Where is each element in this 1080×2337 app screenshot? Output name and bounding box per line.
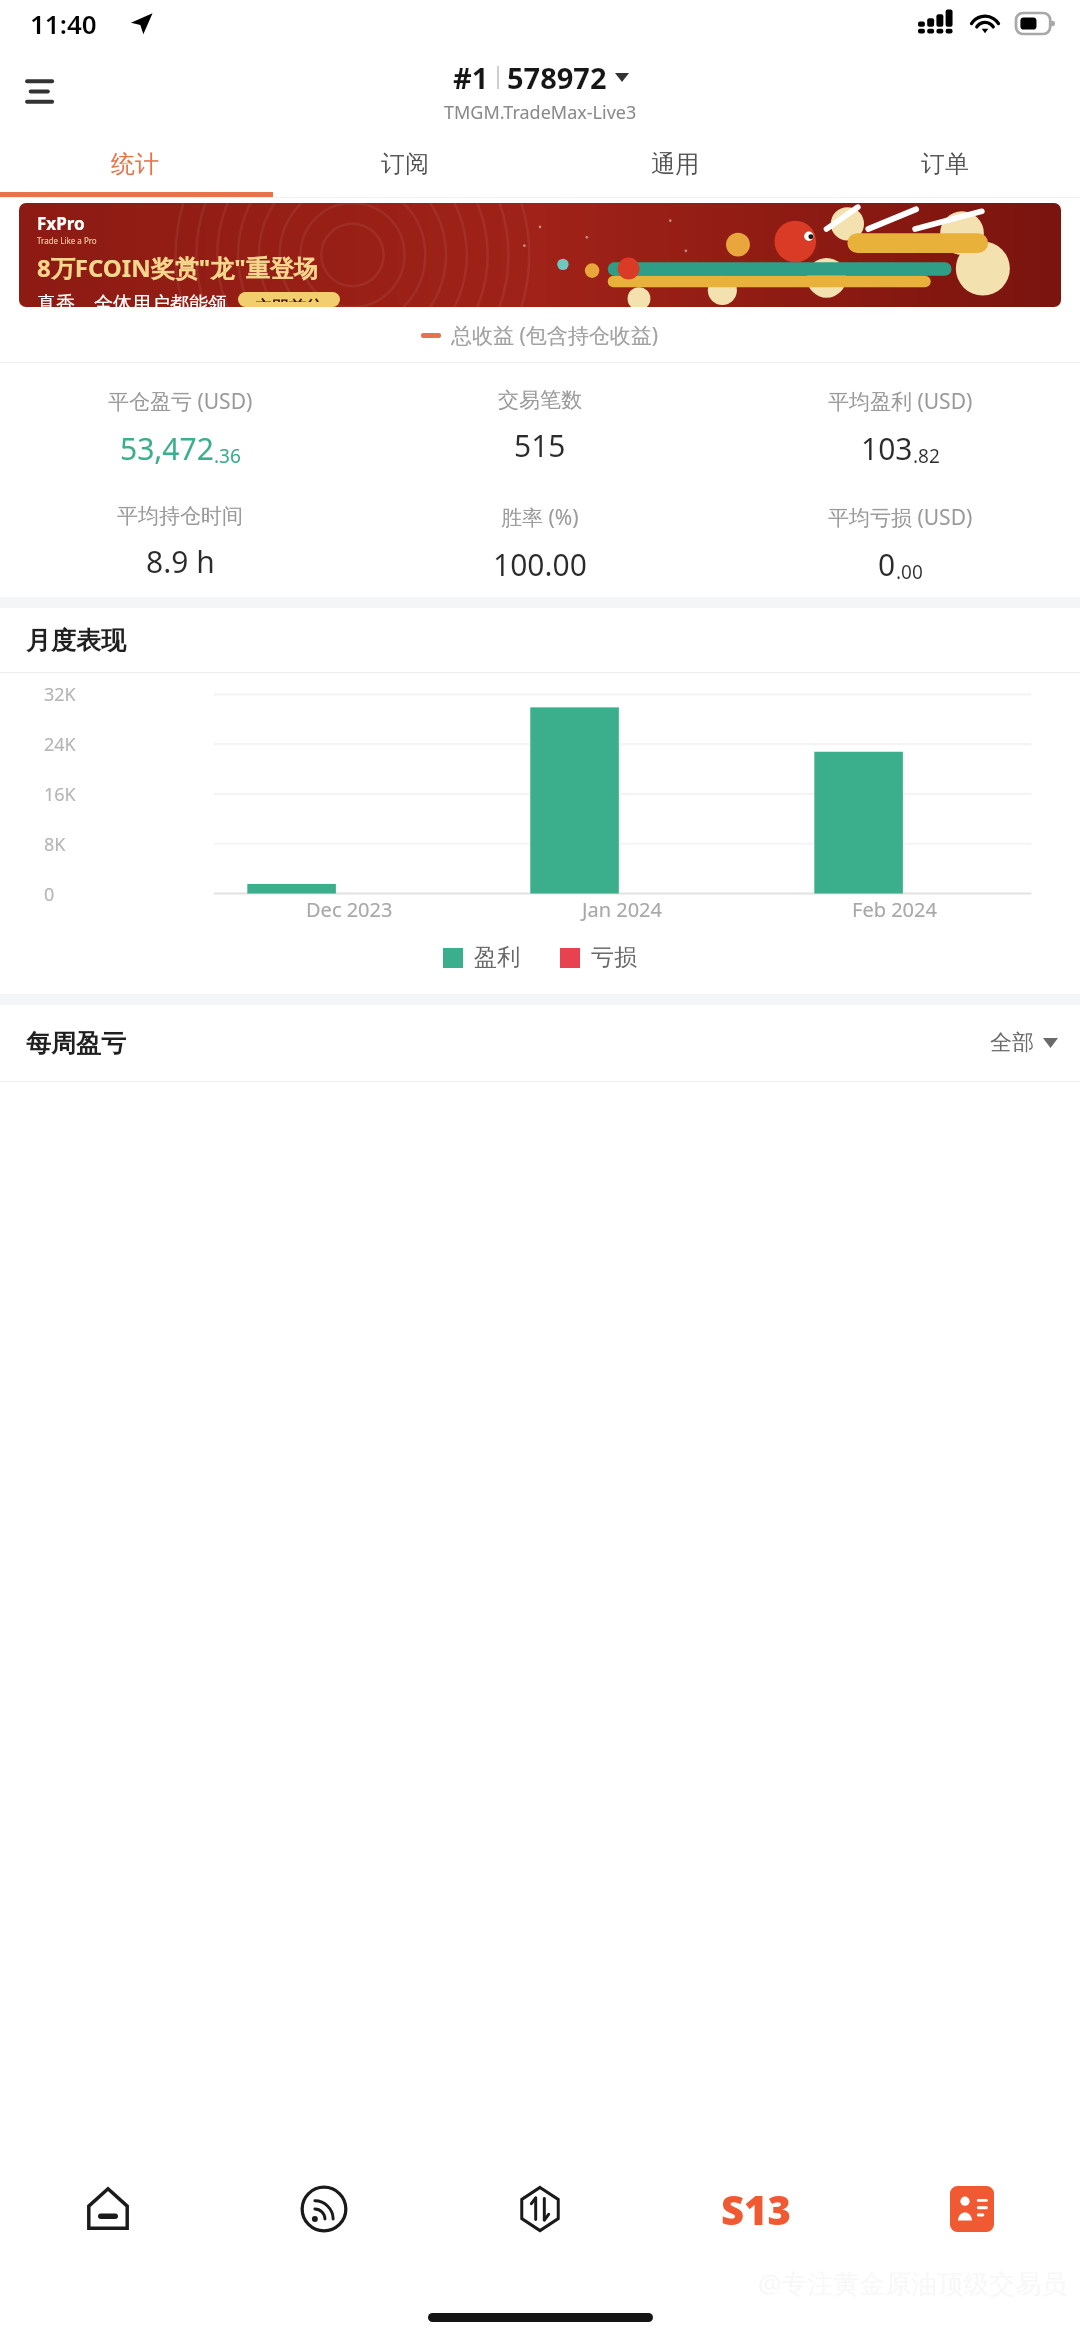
button[interactable]: S13 xyxy=(648,2153,864,2265)
staticText: .00 xyxy=(896,559,923,585)
button[interactable]: 全部 xyxy=(990,1029,1058,1057)
staticText: Dec 2023 xyxy=(306,896,393,923)
staticText: 平均持仓时间 xyxy=(117,503,243,529)
button[interactable]: Menu xyxy=(16,62,74,120)
button[interactable]: #1 xyxy=(444,58,637,125)
staticText: 统计 xyxy=(111,149,159,179)
staticText: 8.9 h xyxy=(146,541,215,582)
staticText: 8万FCOIN奖赏"龙"重登场 xyxy=(37,251,318,284)
staticText: 订阅 xyxy=(381,149,429,179)
staticText: 103 xyxy=(861,428,913,469)
staticText: TMGM.TradeMax-Live3 xyxy=(444,100,637,125)
button[interactable]: 胜率 (%) xyxy=(360,503,720,585)
staticText: .82 xyxy=(913,443,940,469)
staticText: 0 xyxy=(44,882,55,907)
button[interactable]: 平均亏损 (USD) xyxy=(720,503,1080,585)
staticText: 平仓盈亏 (USD) xyxy=(108,387,253,416)
staticText: 0 xyxy=(878,544,896,585)
button[interactable]: Signals xyxy=(216,2153,432,2265)
button[interactable]: 通用 xyxy=(540,136,810,192)
staticText: .36 xyxy=(214,443,241,469)
staticText: 16K xyxy=(44,782,76,807)
staticText: #1 xyxy=(453,58,489,97)
button[interactable]: FxPro xyxy=(19,203,1061,307)
staticText: 100.00 xyxy=(493,544,587,585)
button[interactable]: 订阅 xyxy=(270,136,540,192)
staticText: 盈利 xyxy=(474,943,520,972)
staticText: 24K xyxy=(44,732,76,757)
staticText: 立即前往 xyxy=(255,297,323,302)
staticText: 8K xyxy=(44,832,66,857)
staticText: 平均盈利 (USD) xyxy=(828,387,973,416)
staticText: 总收益 (包含持仓收益) xyxy=(451,321,659,350)
staticText: 平均亏损 (USD) xyxy=(828,503,973,532)
staticText: 全部 xyxy=(990,1029,1034,1057)
staticText: 交易笔数 xyxy=(498,387,582,413)
button[interactable]: 交易笔数 xyxy=(360,387,720,466)
staticText: Trade Like a Pro xyxy=(37,235,97,246)
button[interactable]: Trade xyxy=(432,2153,648,2265)
staticText: Feb 2024 xyxy=(852,896,937,923)
staticText: 53,472 xyxy=(120,428,214,469)
button[interactable]: 立即前往 xyxy=(255,297,323,302)
staticText: 订单 xyxy=(921,149,969,179)
button[interactable]: 平均盈利 (USD) xyxy=(720,387,1080,469)
staticText: 真香，全体用户都能领 xyxy=(37,292,227,307)
staticText: 胜率 (%) xyxy=(501,503,579,532)
staticText: 月度表现 xyxy=(26,625,126,656)
staticText: 515 xyxy=(514,425,566,466)
button[interactable]: 订单 xyxy=(810,136,1080,192)
staticText: 通用 xyxy=(651,149,699,179)
staticText: 亏损 xyxy=(591,943,637,972)
staticText: 32K xyxy=(44,682,76,707)
button[interactable]: Home xyxy=(0,2153,216,2265)
button[interactable]: 月度表现 xyxy=(0,608,1080,672)
button[interactable]: Profile xyxy=(864,2153,1080,2265)
staticText: 578972 xyxy=(507,58,607,97)
staticText: 每周盈亏 xyxy=(26,1028,126,1059)
button[interactable]: 平仓盈亏 (USD) xyxy=(0,387,360,469)
staticText: Jan 2024 xyxy=(582,896,662,923)
staticText: FxPro xyxy=(37,212,85,235)
staticText: 11:40 xyxy=(30,6,97,41)
button[interactable]: 平均持仓时间 xyxy=(0,503,360,582)
button[interactable]: 统计 xyxy=(0,136,270,192)
staticText: S13 xyxy=(721,2182,791,2236)
